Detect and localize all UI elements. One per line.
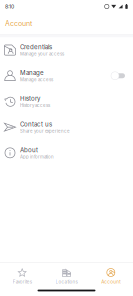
staticText: Account [5, 19, 32, 28]
staticText: About [20, 146, 38, 154]
button[interactable]: Account [89, 263, 133, 285]
button[interactable]: Locations [44, 263, 89, 285]
staticText: Contact us [20, 120, 52, 128]
staticText: Manage your access [20, 51, 64, 57]
staticText: History [20, 95, 40, 102]
staticText: History access [20, 103, 50, 108]
button[interactable]: Credentials [0, 37, 133, 63]
staticText: Locations [55, 279, 77, 284]
button[interactable]: About [0, 140, 133, 166]
staticText: Share your experience [20, 128, 70, 134]
button[interactable]: Contact us [0, 114, 133, 140]
staticText: Favorites [13, 279, 32, 284]
button[interactable]: Favorites [0, 263, 44, 285]
staticText: Account [101, 279, 120, 284]
staticText: 8:10 [5, 3, 14, 10]
staticText: Manage access [20, 77, 53, 82]
staticText: App information [20, 154, 54, 159]
staticText: Credentials [20, 43, 52, 51]
staticText: Manage [20, 69, 44, 76]
button[interactable]: Manage [0, 63, 133, 89]
button[interactable]: History [0, 89, 133, 114]
